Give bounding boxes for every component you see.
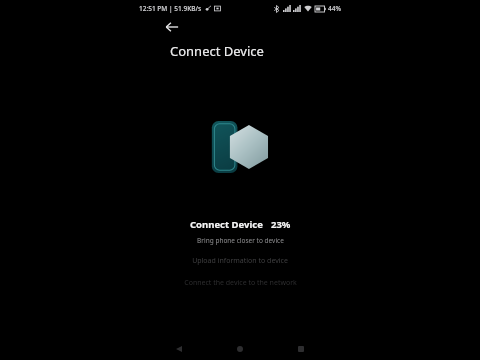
staticText: Connect Device [170,42,264,60]
staticText: 23% [271,218,291,231]
staticText: Upload information to device [192,256,288,266]
button[interactable]: Home [230,339,250,359]
button[interactable]: Recent apps [291,339,311,359]
staticText: 12:51 PM | 51.9KB/s [139,4,202,13]
button[interactable]: Back [163,18,181,36]
staticText: 44% [328,4,341,13]
staticText: Bring phone closer to device [197,236,284,245]
staticText: Connect the device to the network [184,278,297,288]
staticText: Connect Device [190,218,263,231]
button[interactable]: Back [169,339,189,359]
